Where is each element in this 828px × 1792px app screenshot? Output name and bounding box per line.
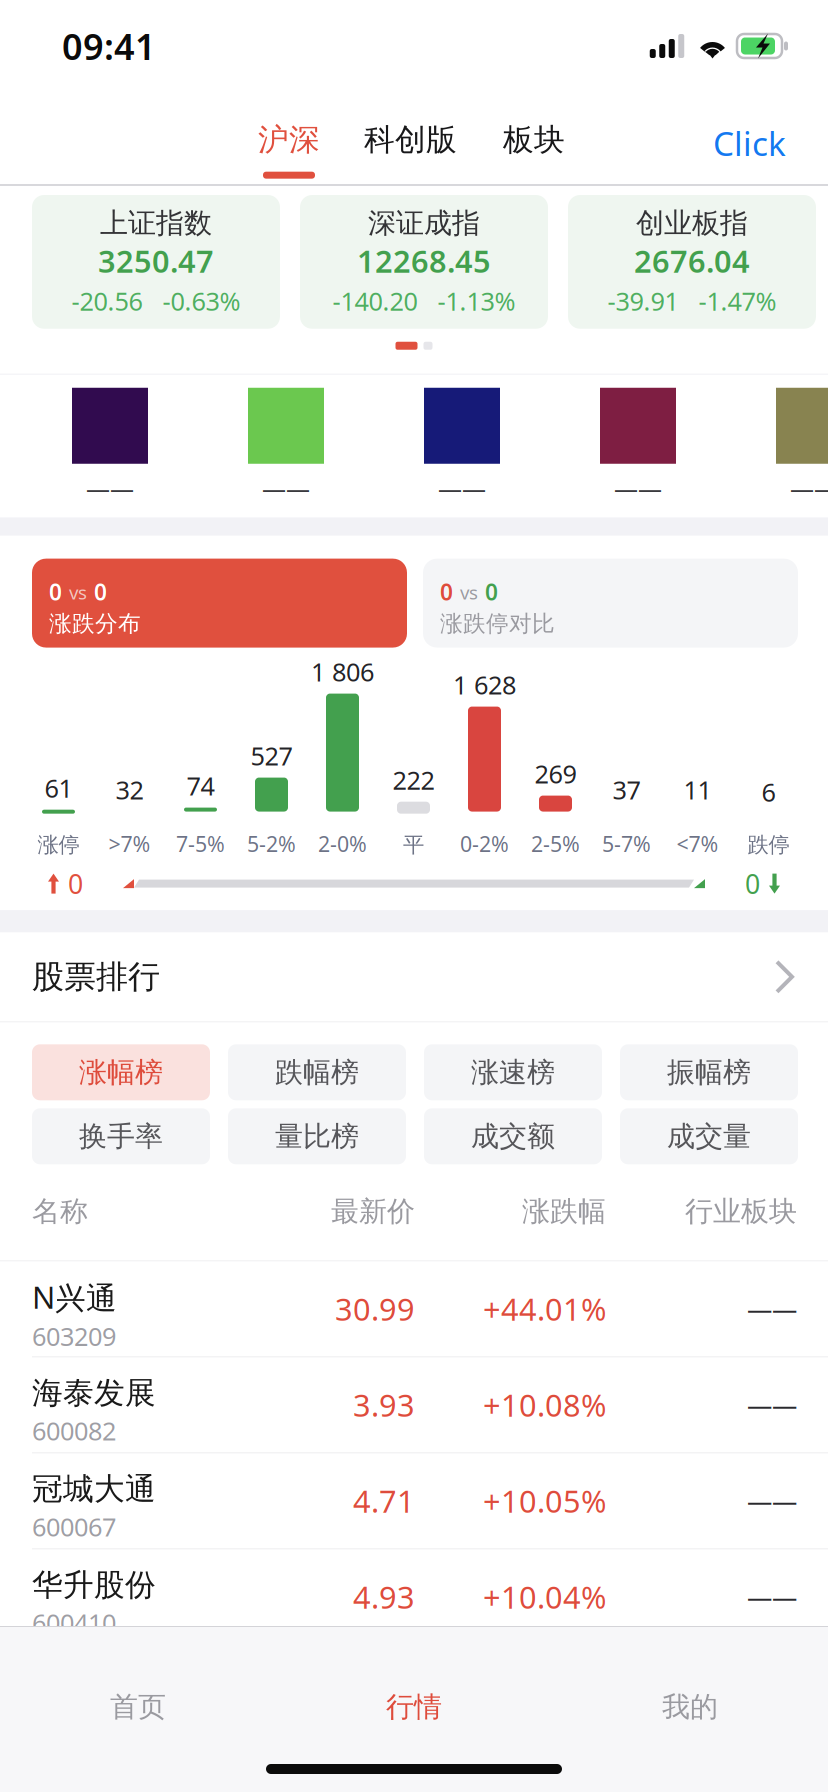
staticText: vs	[69, 580, 87, 605]
staticText: 30.99	[335, 1288, 415, 1329]
staticText: ——	[614, 472, 662, 504]
button[interactable]: 板块	[503, 121, 565, 159]
staticText: <7%	[676, 830, 718, 858]
button[interactable]: 量比榜	[228, 1108, 406, 1164]
staticText: 269	[534, 757, 576, 790]
staticText: 74	[186, 769, 214, 802]
staticText: -1.47%	[698, 284, 776, 318]
staticText: 涨跌幅	[522, 1194, 606, 1229]
button[interactable]: 0	[423, 559, 798, 647]
staticText: 9.87	[353, 1672, 415, 1713]
button[interactable]: ——	[776, 388, 828, 504]
button[interactable]: 沪深	[258, 121, 320, 179]
staticText: 12268.45	[357, 240, 491, 281]
staticText: 3250.47	[98, 240, 214, 281]
staticText: 1 806	[311, 655, 374, 688]
staticText: 32	[115, 773, 143, 806]
staticText: 华升股份	[32, 1566, 156, 1604]
staticText: 5-7%	[602, 830, 651, 858]
button[interactable]: 涨幅榜	[32, 1044, 210, 1100]
staticText: 涨速榜	[471, 1055, 555, 1089]
staticText: 0	[440, 577, 453, 607]
button[interactable]: Click	[713, 121, 786, 165]
staticText: N兴通	[32, 1277, 117, 1317]
button[interactable]: ——	[600, 388, 676, 504]
button[interactable]: 海泰发展	[0, 1357, 828, 1453]
staticText: +10.04%	[483, 1576, 606, 1617]
staticText: ——	[747, 1580, 797, 1614]
staticText: ——	[262, 472, 310, 504]
button[interactable]: 科创版	[364, 121, 457, 159]
button[interactable]: 华升股份	[0, 1549, 828, 1645]
button[interactable]: 冠城大通	[0, 1453, 828, 1549]
button[interactable]: 换手率	[32, 1108, 210, 1164]
button[interactable]: 深证成指	[300, 195, 548, 329]
staticText: 涨跌分布	[49, 610, 141, 637]
staticText: 600410	[32, 1606, 116, 1639]
staticText: 09:41	[62, 22, 156, 70]
staticText: -1.13%	[437, 284, 515, 318]
staticText: 股票排行	[32, 957, 160, 996]
staticText: ——	[790, 472, 828, 504]
button[interactable]: 创业板指	[568, 195, 816, 329]
button[interactable]: ——	[424, 388, 500, 504]
staticText: Click	[713, 121, 786, 165]
button[interactable]: 首页	[0, 1685, 276, 1729]
staticText: -0.63%	[162, 284, 240, 318]
button[interactable]: 行情	[276, 1685, 552, 1729]
staticText: 名称	[32, 1194, 88, 1229]
staticText: 海泰发展	[32, 1374, 156, 1412]
button[interactable]: 成交量	[620, 1108, 798, 1164]
staticText: 冠城大通	[32, 1470, 156, 1508]
button[interactable]: 0	[32, 559, 407, 647]
staticText: -140.20	[332, 284, 417, 318]
staticText: 最新价	[331, 1194, 415, 1229]
staticText: 4.71	[353, 1480, 415, 1521]
staticText: 0	[68, 866, 83, 901]
staticText: 跌幅榜	[275, 1055, 359, 1089]
staticText: 2676.04	[634, 240, 750, 281]
staticText: 行情	[386, 1690, 442, 1724]
staticText: 涨停	[37, 832, 79, 858]
staticText: 我的	[662, 1690, 718, 1724]
staticText: 成交量	[667, 1119, 751, 1153]
staticText: 527	[250, 739, 292, 772]
button[interactable]: 上证指数	[32, 195, 280, 329]
button[interactable]: 跌幅榜	[228, 1044, 406, 1100]
staticText: 600818	[32, 1702, 116, 1735]
staticText: 科创版	[364, 121, 457, 159]
staticText: 成交额	[471, 1119, 555, 1153]
staticText: 2-0%	[318, 830, 367, 858]
staticText: 0	[485, 577, 498, 607]
staticText: 0	[94, 577, 107, 607]
staticText: 跌停	[747, 832, 789, 858]
staticText: 11	[683, 773, 711, 806]
staticText: ——	[747, 1292, 797, 1326]
staticText: 600067	[32, 1510, 116, 1543]
staticText: 换手率	[79, 1119, 163, 1153]
button[interactable]: ——	[72, 388, 148, 504]
staticText: >7%	[108, 830, 150, 858]
staticText: 5-2%	[247, 830, 296, 858]
staticText: ——	[747, 1484, 797, 1518]
staticText: 创业板指	[636, 206, 748, 240]
staticText: 61	[44, 771, 72, 805]
button[interactable]: 振幅榜	[620, 1044, 798, 1100]
button[interactable]: 我的	[552, 1685, 828, 1729]
button[interactable]: ——	[248, 388, 324, 504]
button[interactable]: 成交额	[424, 1108, 602, 1164]
staticText: +10.08%	[483, 1384, 606, 1425]
button[interactable]: 涨速榜	[424, 1044, 602, 1100]
staticText: -39.91	[607, 284, 678, 318]
staticText: 板块	[503, 121, 565, 159]
staticText: 2-5%	[531, 830, 580, 858]
staticText: 222	[392, 763, 434, 797]
staticText: 0	[49, 577, 62, 607]
button[interactable]: 中路股份	[0, 1645, 828, 1741]
staticText: 6	[761, 775, 775, 809]
staticText: 4.93	[353, 1576, 415, 1617]
button[interactable]: 股票排行	[0, 932, 828, 1021]
button[interactable]: N兴通	[0, 1261, 828, 1357]
